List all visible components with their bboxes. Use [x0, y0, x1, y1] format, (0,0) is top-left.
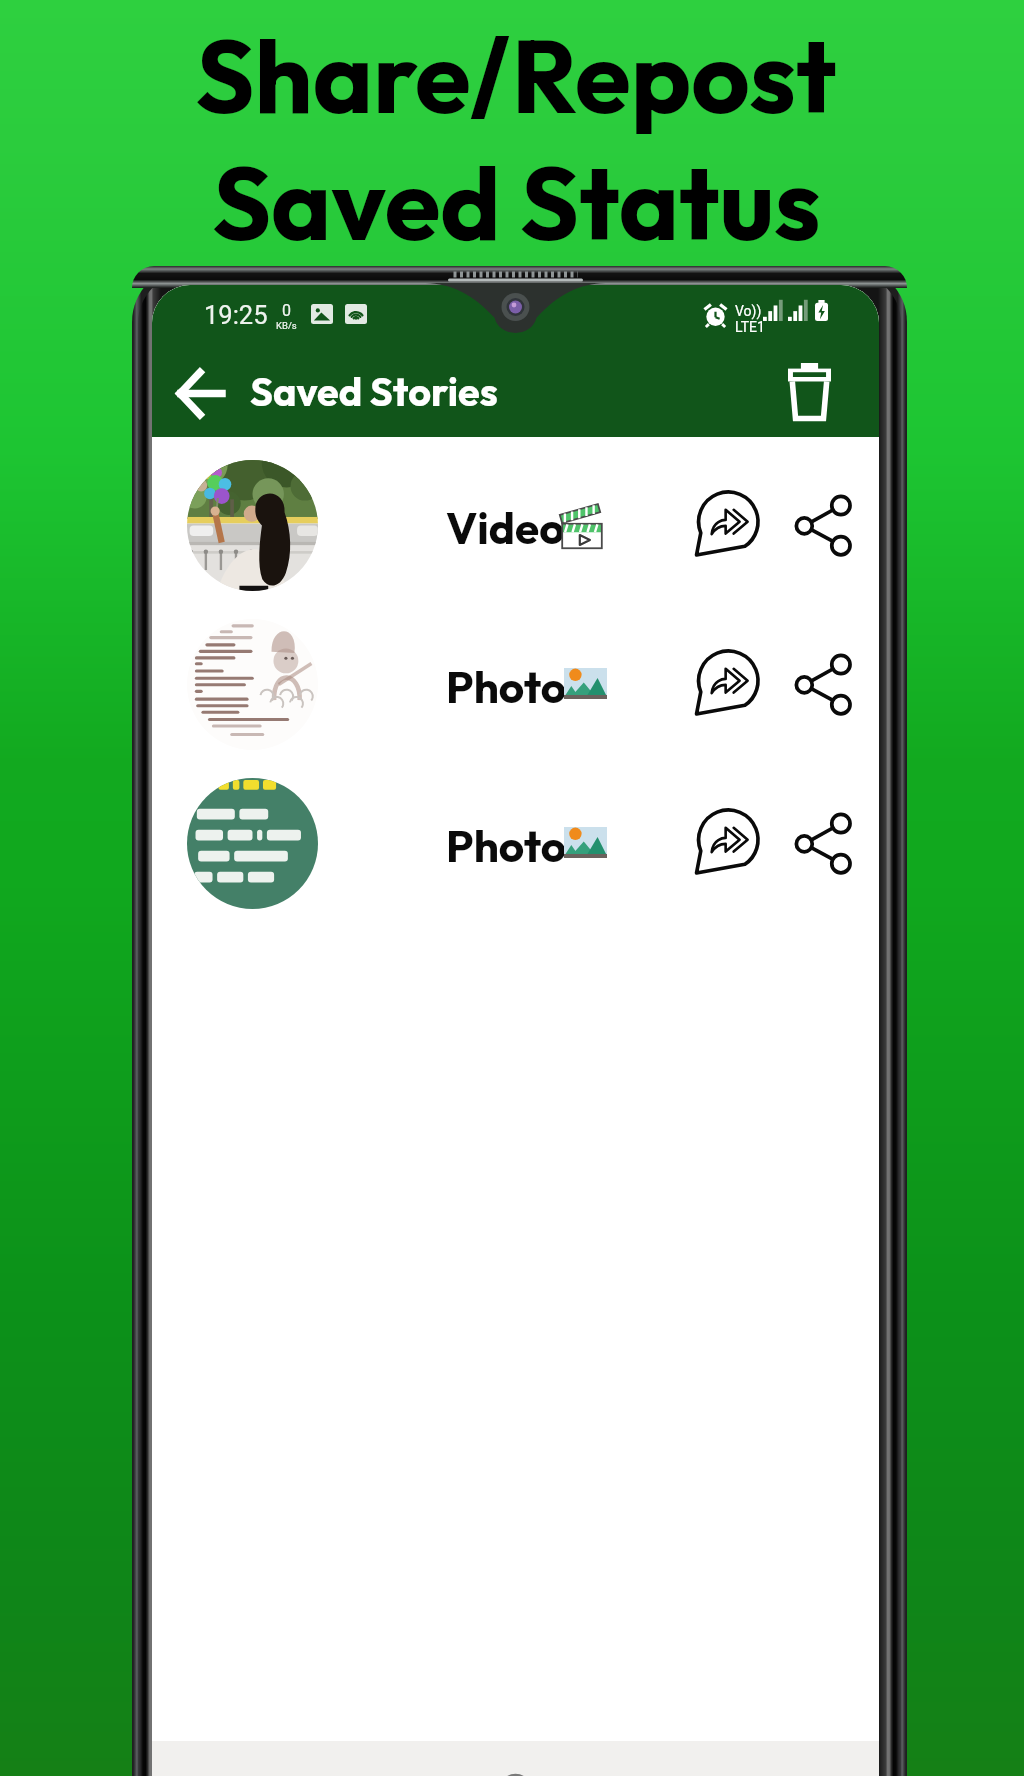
- button[interactable]: Share: [782, 485, 862, 565]
- button[interactable]: Video: [152, 446, 879, 604]
- staticText: Photo: [446, 659, 567, 714]
- button[interactable]: Delete all: [760, 342, 858, 440]
- staticText: 19:25: [204, 300, 268, 330]
- staticText: 0: [282, 301, 291, 320]
- button[interactable]: Repost to WhatsApp: [687, 644, 767, 724]
- button[interactable]: Back: [152, 344, 249, 442]
- staticText: Video: [446, 500, 565, 555]
- button[interactable]: Photo: [152, 764, 879, 922]
- button[interactable]: Share: [782, 644, 862, 724]
- staticText: Saved Status: [212, 138, 821, 266]
- button[interactable]: Repost to WhatsApp: [687, 803, 767, 883]
- button[interactable]: Share: [782, 803, 862, 883]
- button[interactable]: Photo: [152, 605, 879, 763]
- staticText: Vo)): [735, 303, 762, 319]
- staticText: KB/s: [276, 320, 297, 331]
- button[interactable]: Repost to WhatsApp: [687, 485, 767, 565]
- staticText: Share/Repost: [195, 11, 837, 139]
- staticText: Saved Stories: [250, 366, 498, 416]
- staticText: LTE1: [735, 319, 765, 335]
- staticText: Photo: [446, 818, 567, 873]
